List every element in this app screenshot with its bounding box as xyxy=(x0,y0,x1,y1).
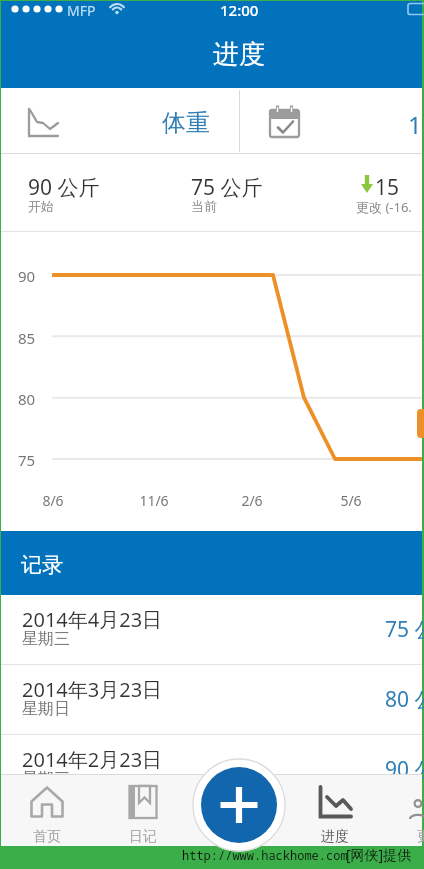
staticText: 日记 xyxy=(129,828,157,846)
staticText: 90 xyxy=(18,266,36,286)
staticText: 开始 xyxy=(28,198,54,214)
staticText: 2/6 xyxy=(240,491,264,510)
staticText: 8/6 xyxy=(41,491,65,510)
staticText: 2014年3月23日 xyxy=(22,676,163,703)
staticText: 2014年2月23日 xyxy=(22,746,163,773)
button[interactable]: 体重 xyxy=(1,88,239,154)
button[interactable]: 2014年4月23日 xyxy=(1,595,422,665)
staticText: 75 xyxy=(18,450,36,470)
staticText: 15 xyxy=(375,173,400,202)
staticText: 进度 xyxy=(213,38,265,71)
staticText: 12:00 xyxy=(220,0,259,16)
staticText: 更改 (-16. xyxy=(356,198,412,216)
button[interactable]: Me xyxy=(384,775,424,847)
staticText: 2014年4月23日 xyxy=(22,606,163,633)
button[interactable]: 首页 xyxy=(0,775,94,847)
staticText: 当前 xyxy=(191,198,217,214)
staticText: 75 公 xyxy=(385,615,424,644)
staticText: 90 公 xyxy=(385,755,424,784)
staticText: 80 公 xyxy=(385,685,424,714)
button[interactable]: 进度 xyxy=(288,775,382,847)
staticText: 体重 xyxy=(162,108,210,138)
staticText: 首页 xyxy=(33,828,61,846)
button[interactable]: 2014年3月23日 xyxy=(1,665,422,735)
button[interactable]: 2014年2月23日 xyxy=(1,735,422,805)
staticText: 进度 xyxy=(321,828,349,846)
staticText: 星期日 xyxy=(22,699,70,719)
button[interactable]: 1 xyxy=(240,88,422,154)
staticText: 1 xyxy=(408,108,422,141)
staticText: 5/6 xyxy=(339,491,363,510)
staticText: 11/6 xyxy=(138,491,170,510)
staticText: MFP xyxy=(67,1,96,17)
staticText: 星期三 xyxy=(22,769,70,789)
staticText: 记录 xyxy=(21,552,63,578)
staticText: 75 公斤 xyxy=(191,173,263,202)
staticText: http://www.hackhome.com xyxy=(182,847,348,863)
button[interactable]: Add record xyxy=(201,767,277,843)
button[interactable]: 日记 xyxy=(96,775,190,847)
staticText: [网侠]提供 xyxy=(346,845,412,864)
staticText: 更多 xyxy=(417,828,424,846)
staticText: 90 公斤 xyxy=(28,173,100,202)
staticText: 85 xyxy=(18,328,36,348)
staticText: 80 xyxy=(18,389,36,409)
staticText: 星期三 xyxy=(22,629,70,649)
